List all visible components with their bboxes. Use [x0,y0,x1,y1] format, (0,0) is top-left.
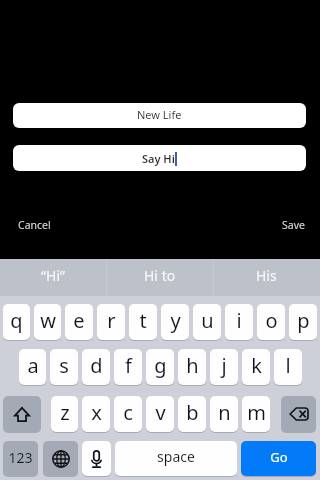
button[interactable]: x [82,396,110,432]
staticText: f [125,352,132,379]
staticText: t [139,307,147,334]
staticText: u [201,307,214,334]
staticText: Cancel [18,218,51,232]
button[interactable]: Switch keyboard language [43,441,78,476]
button[interactable]: g [146,349,174,385]
button[interactable]: z [51,396,78,432]
staticText: Save [282,218,305,232]
button[interactable]: h [178,349,206,385]
staticText: n [218,399,231,426]
staticText: g [154,352,167,379]
button[interactable]: a [19,349,46,385]
button[interactable]: j [210,349,238,385]
staticText: w [40,307,56,334]
staticText: o [265,307,278,334]
button[interactable]: l [274,349,302,385]
staticText: b [186,399,199,426]
staticText: c [123,399,133,426]
button[interactable]: v [146,396,174,432]
button[interactable]: r [97,304,125,340]
button[interactable]: space [115,441,237,476]
button[interactable]: e [65,304,93,340]
button[interactable]: Save [282,218,305,232]
staticText: y [170,307,181,334]
staticText: h [186,352,199,379]
staticText: Hi to [144,266,176,285]
button[interactable]: k [242,349,270,385]
button[interactable]: Cancel [18,218,51,232]
staticText: i [236,307,242,334]
button[interactable]: p [289,304,317,340]
button[interactable]: i [225,304,253,340]
button[interactable]: Say Hi [13,145,306,171]
staticText: q [10,307,23,334]
staticText: d [90,352,103,379]
staticText: 123 [8,448,33,467]
staticText: s [59,352,69,379]
staticText: k [251,352,262,379]
button[interactable]: m [242,396,270,432]
staticText: x [91,399,102,426]
staticText: m [247,399,266,426]
button[interactable]: w [34,304,61,340]
button[interactable]: o [257,304,285,340]
button[interactable]: “Hi” [0,259,106,296]
button[interactable]: His [213,259,320,296]
button[interactable]: Dictate [82,441,111,476]
staticText: v [155,399,166,426]
button[interactable]: 123 [3,441,38,476]
staticText: p [297,307,310,334]
button[interactable]: d [82,349,110,385]
staticText: e [73,307,85,334]
staticText: j [221,352,227,379]
staticText: l [285,352,291,379]
button[interactable]: u [193,304,221,340]
staticText: “Hi” [41,266,66,285]
button[interactable]: Shift [3,396,41,432]
staticText: r [107,307,116,334]
button[interactable]: b [178,396,206,432]
button[interactable]: y [161,304,189,340]
button[interactable]: c [114,396,142,432]
button[interactable]: Go [241,441,316,476]
button[interactable]: s [50,349,78,385]
button[interactable]: f [114,349,142,385]
staticText: Go [270,448,288,466]
button[interactable]: q [3,304,30,340]
staticText: a [27,352,39,379]
button[interactable]: Backspace [281,396,316,432]
staticText: New Life [137,107,182,122]
staticText: His [256,266,277,285]
staticText: space [157,447,195,466]
button[interactable]: New Life [13,103,306,128]
staticText: z [60,399,70,426]
button[interactable]: t [129,304,157,340]
button[interactable]: n [210,396,238,432]
staticText: Say Hi [142,151,175,166]
button[interactable]: Hi to [106,259,213,296]
